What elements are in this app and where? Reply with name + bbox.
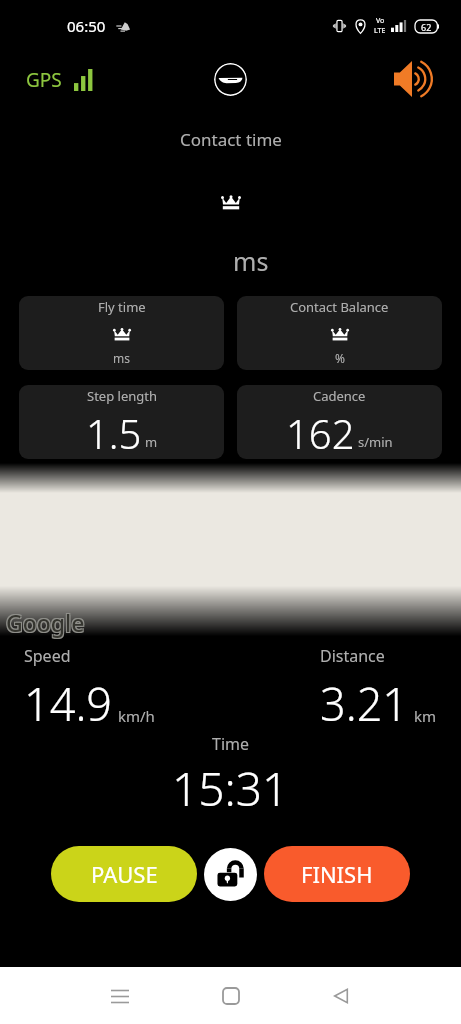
staticText: Cadence [313,387,366,405]
button[interactable]: Sound [392,55,440,103]
staticText: LTE [374,26,386,36]
staticText: 62 [421,21,432,33]
staticText: ms [113,350,130,366]
staticText: Distance [320,645,385,667]
button[interactable]: Lock [204,848,257,901]
staticText: Google [6,607,85,638]
button[interactable]: Activity type [214,63,247,96]
staticText: Google [7,606,86,637]
staticText: 06:50 [67,16,106,36]
staticText: GPS [26,67,62,93]
button[interactable]: GPS [26,67,94,93]
button[interactable]: Fly time [19,296,224,370]
staticText: Fly time [98,298,146,316]
staticText: Vo [376,16,385,26]
staticText: s/min [358,433,393,451]
staticText: FINISH [301,859,373,889]
button[interactable]: Back [317,972,365,1020]
button[interactable]: Recents [96,972,144,1020]
staticText: 15:31 [172,757,289,820]
staticText: km [414,706,437,726]
button[interactable]: Cadence [237,385,442,459]
staticText: km/h [118,706,155,726]
button[interactable]: PAUSE [51,846,197,902]
staticText: Google [5,606,84,637]
staticText: m [145,433,158,451]
button[interactable]: Contact Balance [237,296,442,370]
staticText: 1.5 [86,406,142,459]
button[interactable]: Step length [19,385,224,459]
staticText: 3.21 [320,673,409,734]
button[interactable]: FINISH [264,846,410,902]
staticText: 14.9 [24,673,113,734]
staticText: Speed [24,645,71,667]
staticText: ms [233,244,269,278]
button[interactable]: Home [207,972,255,1020]
staticText: Contact time [180,128,282,151]
staticText: Google [7,608,86,639]
staticText: Contact Balance [290,298,389,316]
staticText: 162 [286,406,355,459]
staticText: PAUSE [91,859,158,889]
staticText: Time [212,733,250,755]
staticText: Step length [87,387,157,405]
staticText: Google [5,608,84,639]
staticText: % [335,350,345,366]
